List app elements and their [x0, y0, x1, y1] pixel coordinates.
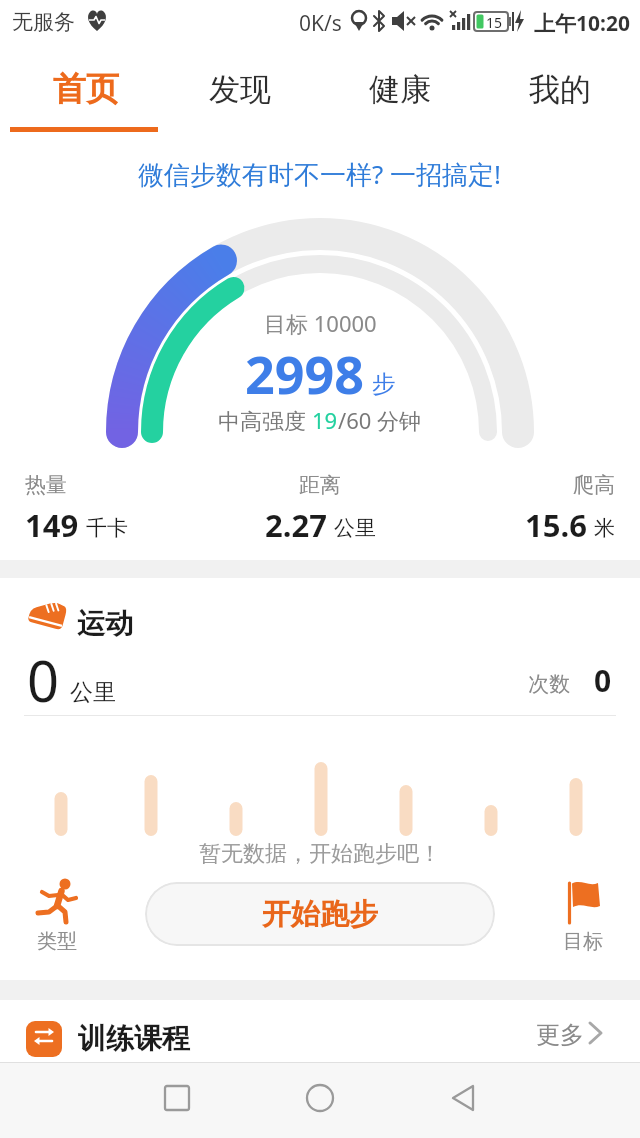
staticText: 健康 [369, 70, 431, 109]
staticText: 无服务 [12, 9, 75, 35]
staticText: 公里 [70, 678, 116, 707]
staticText: 公里 [334, 515, 376, 541]
staticText: 步 [372, 369, 396, 399]
staticText: 15 [486, 13, 503, 32]
button[interactable]: 微信步数有时不一样? 一招搞定! [0, 152, 640, 196]
staticText: 运动 [77, 606, 133, 641]
button[interactable]: 我的 [480, 58, 640, 120]
staticText: 我的 [529, 70, 591, 109]
button[interactable]: 目标 [543, 876, 623, 954]
staticText: 发现 [209, 70, 271, 109]
button[interactable]: 健康 [320, 58, 480, 120]
staticText: 爬高 [573, 472, 615, 498]
staticText: 0 [27, 642, 60, 718]
staticText: 距离 [299, 472, 341, 498]
staticText: 目标 10000 [264, 308, 377, 338]
button[interactable] [130, 1063, 250, 1138]
button[interactable] [260, 1063, 380, 1138]
staticText: 目标 [563, 929, 603, 954]
staticText: 类型 [37, 929, 77, 954]
staticText: 首页 [53, 68, 119, 110]
staticText: 2998 [245, 338, 364, 409]
staticText: /60 分钟 [338, 405, 422, 435]
staticText: 上午10:20 [534, 9, 630, 38]
staticText: 0K/s [299, 9, 342, 38]
staticText: 千卡 [86, 515, 128, 541]
staticText: 0 [594, 660, 612, 701]
staticText: 微信步数有时不一样? 一招搞定! [138, 156, 502, 192]
staticText: 次数 [528, 671, 570, 697]
button[interactable]: 首页 [6, 58, 166, 120]
staticText: 2.27 [265, 504, 327, 546]
button[interactable]: 发现 [160, 58, 320, 120]
staticText: 开始跑步 [262, 896, 378, 933]
staticText: 15.6 [525, 504, 587, 546]
staticText: 米 [594, 515, 615, 541]
staticText: 训练课程 [78, 1021, 190, 1056]
staticText: 暂无数据，开始跑步吧！ [199, 840, 441, 868]
button[interactable] [400, 1063, 520, 1138]
button[interactable]: 开始跑步 [145, 882, 495, 946]
staticText: 更多 [536, 1020, 584, 1050]
staticText: 中高强度 [218, 405, 312, 435]
staticText: 热量 [25, 472, 67, 498]
staticText: 149 [25, 504, 79, 546]
button[interactable]: 类型 [17, 876, 97, 954]
button[interactable]: 训练课程 [0, 1007, 640, 1062]
staticText: 19 [312, 405, 338, 435]
